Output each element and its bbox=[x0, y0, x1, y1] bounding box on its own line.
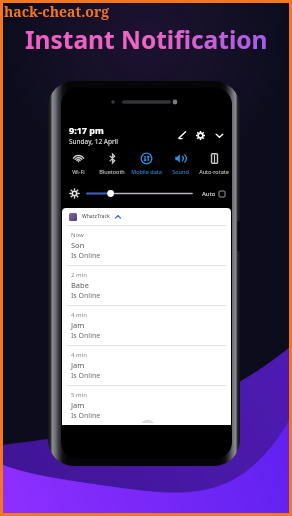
staticText: Sound bbox=[172, 168, 189, 175]
button[interactable]: Now bbox=[62, 225, 231, 265]
button[interactable]: Mobile data bbox=[129, 152, 163, 175]
staticText: 9:17 pm bbox=[69, 124, 104, 136]
staticText: 4 min bbox=[71, 311, 87, 319]
staticText: Is Online bbox=[71, 291, 101, 301]
staticText: Now bbox=[71, 231, 84, 239]
staticText: Sunday, 12 April bbox=[69, 137, 119, 146]
staticText: Mobile data bbox=[131, 168, 162, 175]
button[interactable]: Brightness bbox=[86, 188, 193, 199]
staticText: Son bbox=[71, 240, 85, 250]
staticText: Auto-rotate bbox=[199, 168, 229, 175]
button[interactable]: Wi-Fi bbox=[62, 152, 95, 175]
button[interactable]: 5 min bbox=[62, 385, 231, 425]
staticText: WhatzTrack bbox=[82, 213, 110, 220]
staticText: Is Online bbox=[71, 331, 101, 341]
staticText: Babe bbox=[71, 280, 89, 290]
staticText: 4 min bbox=[71, 351, 87, 359]
button[interactable]: Bluetooth bbox=[95, 152, 129, 175]
button[interactable]: 2 min bbox=[62, 265, 231, 305]
staticText: Wi-Fi bbox=[72, 168, 85, 175]
button[interactable]: Edit bbox=[177, 130, 188, 141]
staticText: Instant Notification bbox=[25, 23, 268, 56]
staticText: Is Online bbox=[71, 411, 101, 421]
staticText: Is Online bbox=[71, 251, 101, 261]
button[interactable]: Sound bbox=[163, 152, 197, 175]
staticText: Jam bbox=[71, 360, 85, 370]
button[interactable]: Auto brightness bbox=[219, 191, 225, 197]
button[interactable]: WhatzTrack bbox=[62, 208, 231, 225]
button[interactable]: Auto-rotate bbox=[197, 152, 231, 175]
staticText: Jam bbox=[71, 400, 85, 410]
staticText: Auto bbox=[202, 190, 216, 198]
staticText: 5 min bbox=[71, 391, 87, 399]
staticText: 2 min bbox=[71, 271, 87, 279]
button[interactable]: 4 min bbox=[62, 305, 231, 345]
staticText: hack-cheat.org bbox=[4, 2, 110, 21]
button[interactable]: Settings bbox=[195, 130, 206, 141]
button[interactable]: Expand bbox=[214, 130, 225, 141]
staticText: Jam bbox=[71, 320, 85, 330]
button[interactable]: 4 min bbox=[62, 345, 231, 385]
staticText: Is Online bbox=[71, 371, 101, 381]
staticText: Bluetooth bbox=[99, 168, 125, 175]
